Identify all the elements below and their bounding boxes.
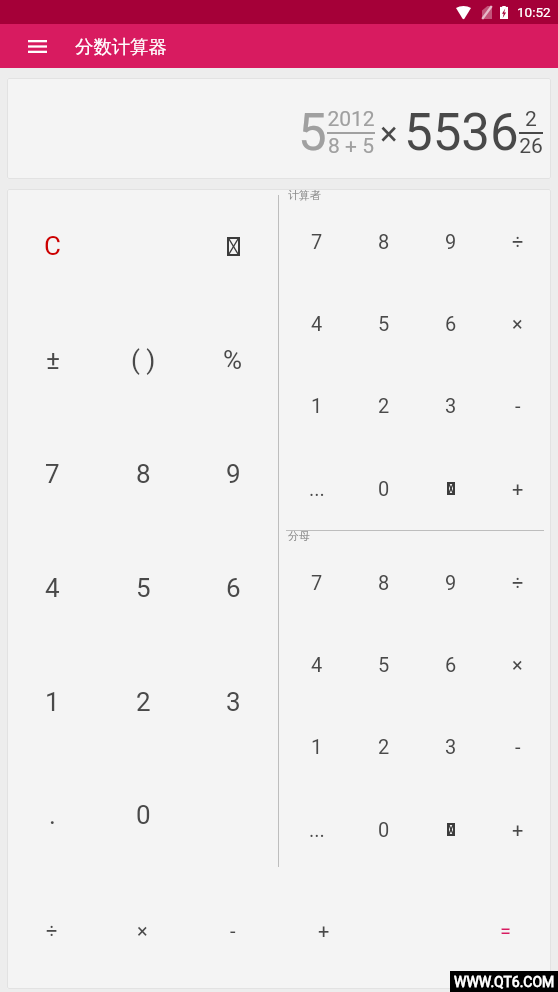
button[interactable]: % <box>188 303 278 417</box>
staticText: 7 <box>311 571 323 594</box>
button[interactable]: + <box>484 447 551 530</box>
button[interactable]: 3 <box>417 364 484 447</box>
staticText: ± <box>46 345 60 375</box>
button[interactable]: Menu <box>18 24 57 68</box>
button[interactable]: - <box>187 871 278 989</box>
button[interactable]: × <box>484 282 551 364</box>
button[interactable]: 0 <box>350 788 417 871</box>
staticText: . <box>49 800 56 830</box>
button[interactable]: C <box>7 189 98 303</box>
button[interactable]: 2 <box>350 705 417 788</box>
button[interactable]: 7 <box>283 200 350 282</box>
button[interactable]: × <box>484 623 551 705</box>
staticText: 8 <box>136 459 151 489</box>
button[interactable]: 4 <box>283 623 350 705</box>
staticText: - <box>515 735 521 758</box>
staticText: 3 <box>445 735 457 758</box>
button[interactable]: 8 <box>350 541 417 623</box>
staticText: 0 <box>136 800 151 830</box>
staticText: ( ) <box>131 345 156 375</box>
button[interactable]: Backspace <box>417 447 484 530</box>
staticText: 4 <box>311 653 323 676</box>
button[interactable]: 6 <box>188 531 278 645</box>
staticText: 2 <box>525 107 537 132</box>
button[interactable]: Backspace <box>417 788 484 871</box>
button[interactable]: 5 <box>350 623 417 705</box>
staticText: 9 <box>226 459 241 489</box>
staticText: 5536 <box>404 103 519 163</box>
staticText: 0 <box>378 818 390 841</box>
staticText: 1 <box>311 394 323 417</box>
button[interactable]: 6 <box>417 623 484 705</box>
button[interactable]: = <box>460 871 551 989</box>
staticText: 7 <box>311 230 323 253</box>
button[interactable]: 7 <box>7 417 98 531</box>
staticText: 9 <box>445 571 457 594</box>
button[interactable]: 6 <box>417 282 484 364</box>
button[interactable]: 4 <box>7 531 98 645</box>
button[interactable]: - <box>484 705 551 788</box>
staticText: 0 <box>378 477 390 500</box>
button[interactable]: 5 <box>350 282 417 364</box>
button[interactable]: 9 <box>417 200 484 282</box>
staticText: 2012 <box>327 107 375 132</box>
button[interactable]: 2 <box>350 364 417 447</box>
staticText: ... <box>309 818 325 841</box>
staticText: + <box>318 919 330 942</box>
staticText: 5 <box>136 573 151 603</box>
button[interactable]: 7 <box>283 541 350 623</box>
button[interactable]: ÷ <box>484 541 551 623</box>
button[interactable]: 8 <box>350 200 417 282</box>
button[interactable]: 1 <box>283 364 350 447</box>
button[interactable]: 1 <box>283 705 350 788</box>
staticText: - <box>230 919 236 942</box>
button[interactable]: - <box>484 364 551 447</box>
button[interactable]: 9 <box>188 417 278 531</box>
staticText: 26 <box>519 134 543 159</box>
button[interactable]: ± <box>7 303 98 417</box>
staticText: + <box>512 818 524 841</box>
staticText: 计算者 <box>288 189 321 202</box>
staticText: 3 <box>226 687 241 717</box>
staticText: % <box>223 345 243 375</box>
button[interactable]: 1 <box>7 645 98 759</box>
staticText: - <box>515 394 521 417</box>
staticText: 5 <box>378 653 390 676</box>
button[interactable] <box>369 871 460 989</box>
button[interactable]: ... <box>283 788 350 871</box>
staticText: 分母 <box>288 529 310 543</box>
staticText: + <box>512 477 524 500</box>
button[interactable]: 0 <box>98 759 188 871</box>
staticText: 5 <box>298 103 327 163</box>
staticText: 分数计算器 <box>75 35 167 58</box>
staticText: 9 <box>445 230 457 253</box>
staticText: 8 <box>378 571 390 594</box>
staticText: WWW.QT6.COM <box>454 974 555 990</box>
button[interactable]: 0 <box>350 447 417 530</box>
button[interactable]: × <box>97 871 187 989</box>
staticText: 4 <box>311 312 323 335</box>
staticText: ÷ <box>512 571 524 594</box>
button[interactable]: Backspace <box>188 189 278 303</box>
button[interactable]: ÷ <box>7 871 97 989</box>
button[interactable]: 2 <box>98 645 188 759</box>
staticText: 1 <box>311 735 323 758</box>
button[interactable]: ÷ <box>484 200 551 282</box>
staticText: 7 <box>45 459 60 489</box>
button[interactable]: 4 <box>283 282 350 364</box>
button[interactable]: ( ) <box>98 303 188 417</box>
button[interactable]: 3 <box>188 645 278 759</box>
button[interactable]: ... <box>283 447 350 530</box>
button[interactable]: + <box>484 788 551 871</box>
button[interactable]: + <box>278 871 369 989</box>
button[interactable]: 3 <box>417 705 484 788</box>
staticText: 5 <box>378 312 390 335</box>
staticText: ÷ <box>46 919 58 942</box>
button[interactable]: 9 <box>417 541 484 623</box>
button[interactable]: 8 <box>98 417 188 531</box>
button[interactable]: 5 <box>98 531 188 645</box>
button[interactable]: . <box>7 759 98 871</box>
staticText: 6 <box>445 653 457 676</box>
